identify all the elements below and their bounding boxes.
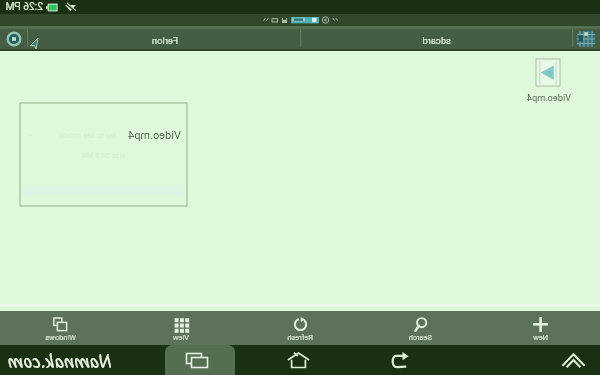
staticText: tap to see details — [58, 131, 116, 140]
button[interactable]: Ferlon — [28, 26, 300, 51]
staticText: size 24.6 MB — [82, 151, 125, 160]
button[interactable]: Back — [391, 345, 409, 375]
button[interactable]: New — [480, 311, 600, 345]
staticText: Windows — [45, 333, 76, 342]
staticText: New — [533, 333, 548, 342]
button[interactable]: Tabs — [576, 30, 596, 48]
button[interactable]: Video.mp4 — [520, 56, 576, 102]
button[interactable]: Home — [287, 345, 310, 375]
staticText: Video.mp4 — [128, 129, 181, 142]
button[interactable]: Search — [360, 311, 480, 345]
button[interactable]: Windows — [0, 311, 120, 345]
button[interactable]: Recent apps — [165, 345, 235, 375]
button[interactable]: Hide navigation bar — [562, 345, 585, 375]
button[interactable]: View — [120, 311, 240, 345]
staticText: Search — [408, 333, 432, 342]
staticText: Refresh — [287, 333, 313, 342]
staticText: sdcard — [422, 35, 451, 46]
staticText: Namnak.com — [7, 347, 112, 375]
button[interactable]: Stop — [5, 30, 23, 48]
button[interactable]: Refresh — [240, 311, 360, 345]
staticText: 2:26 PM — [5, 1, 43, 13]
staticText: View — [172, 333, 189, 342]
button[interactable]: Video.mp4 — [20, 103, 187, 206]
staticText: Ferlon — [151, 35, 178, 46]
button[interactable]: sdcard — [301, 26, 572, 51]
staticText: Video.mp4 — [526, 92, 571, 103]
